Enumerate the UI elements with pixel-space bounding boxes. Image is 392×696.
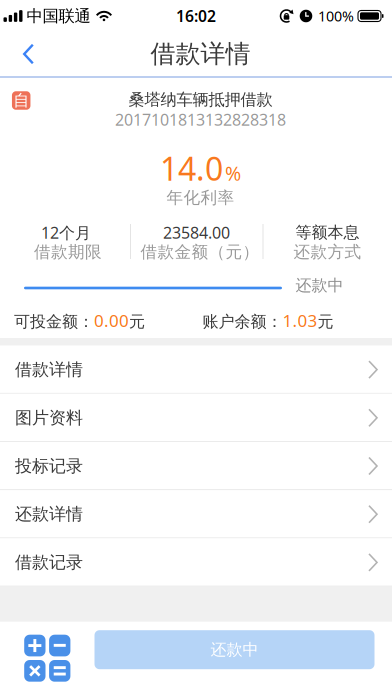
button[interactable]: 还款中 xyxy=(94,630,374,669)
button[interactable]: 借款详情 xyxy=(0,345,392,394)
staticText: 14.0 xyxy=(160,147,223,190)
staticText: 借款详情 xyxy=(15,359,83,380)
staticText: % xyxy=(225,160,241,187)
button[interactable]: 投标记录 xyxy=(0,442,392,490)
staticText: 可投金额： xyxy=(14,312,94,332)
button[interactable]: Back xyxy=(0,32,44,75)
staticText: 23584.00 xyxy=(163,222,230,243)
staticText: 投标记录 xyxy=(15,455,83,477)
staticText: 中国联通 xyxy=(26,6,90,26)
staticText: 还款中 xyxy=(295,275,343,296)
staticText: 借款期限 xyxy=(34,241,102,262)
staticText: 还款方式 xyxy=(293,241,361,262)
staticText: 100% xyxy=(318,6,354,26)
staticText: 图片资料 xyxy=(15,407,83,428)
staticText: 2017101813132828318 xyxy=(115,109,286,130)
staticText: 元 xyxy=(129,312,145,332)
staticText: 0.00 xyxy=(94,309,129,332)
staticText: 借款金额（元） xyxy=(140,241,259,262)
staticText: 借款详情 xyxy=(150,38,250,70)
staticText: 16:02 xyxy=(176,5,216,27)
staticText: 等额本息 xyxy=(295,222,359,243)
staticText: 元 xyxy=(317,312,333,332)
button[interactable]: 还款详情 xyxy=(0,490,392,538)
staticText: 12个月 xyxy=(41,222,91,243)
staticText: 还款详情 xyxy=(15,503,83,525)
button[interactable]: 借款记录 xyxy=(0,538,392,586)
button[interactable]: 图片资料 xyxy=(0,394,392,442)
staticText: 1.03 xyxy=(282,309,317,332)
staticText: 还款中 xyxy=(210,640,258,660)
staticText: 年化利率 xyxy=(166,187,234,208)
staticText: 借款记录 xyxy=(15,552,83,573)
staticText: 桑塔纳车辆抵押借款 xyxy=(128,89,272,110)
staticText: 自 xyxy=(13,90,29,111)
button[interactable]: Calculator xyxy=(24,635,70,682)
staticText: 账户余额： xyxy=(202,312,282,332)
